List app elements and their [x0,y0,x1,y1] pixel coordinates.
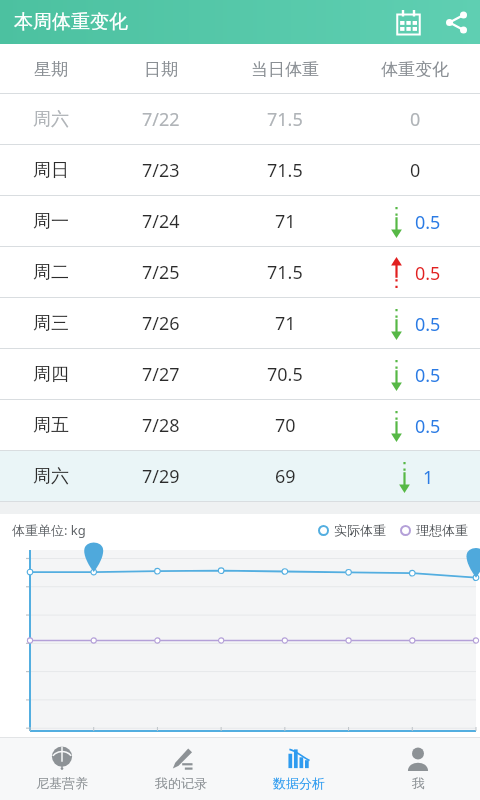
staticText: 星期 [34,59,68,80]
staticText: 71 [275,209,296,234]
staticText: 尼基营养 [36,775,88,791]
button[interactable]: 数据分析 [243,737,355,800]
staticText: 我 [412,775,425,791]
staticText: 体重变化 [381,59,449,80]
staticText: 数据分析 [273,775,325,791]
button[interactable]: Share [432,0,480,44]
staticText: 0.5 [415,414,441,439]
button[interactable]: 我 [362,737,474,800]
button[interactable]: 周日 [0,145,480,196]
button[interactable]: 周六 [0,451,480,502]
staticText: 周一 [33,210,69,233]
staticText: 0.5 [415,261,441,286]
staticText: 69 [275,464,296,489]
button[interactable]: 周三 [0,298,480,349]
staticText: 7/27 [142,362,180,387]
staticText: 7/25 [142,260,180,285]
staticText: 当日体重 [251,59,319,80]
staticText: 体重单位: kg [12,521,86,539]
staticText: 7/28 [142,413,180,438]
staticText: 0.5 [415,363,441,388]
staticText: 1 [423,465,434,490]
button[interactable]: 周一 [0,196,480,247]
button[interactable]: 尼基营养 [6,737,118,800]
staticText: 0 [410,107,421,132]
staticText: 周三 [33,312,69,335]
staticText: 7/22 [142,107,180,132]
staticText: 周日 [33,159,69,182]
button[interactable]: 周六 [0,94,480,145]
button[interactable]: 周五 [0,400,480,451]
staticText: 7/23 [142,158,180,183]
button[interactable]: 周二 [0,247,480,298]
staticText: 理想体重 [416,522,468,538]
staticText: 70.5 [267,362,303,387]
staticText: 周四 [33,363,69,386]
staticText: 实际体重 [334,522,386,538]
staticText: 70 [275,413,296,438]
staticText: 0 [410,158,421,183]
staticText: 周五 [33,414,69,437]
staticText: 71.5 [267,260,303,285]
button[interactable]: 周四 [0,349,480,400]
staticText: 周二 [33,261,69,284]
button[interactable]: 我的记录 [125,737,237,800]
staticText: 71.5 [267,107,303,132]
staticText: 周六 [33,465,69,488]
staticText: 0.5 [415,210,441,235]
staticText: 71 [275,311,296,336]
staticText: 日期 [144,59,178,80]
staticText: 本周体重变化 [14,10,128,34]
staticText: 我的记录 [155,775,207,791]
staticText: 7/24 [142,209,180,234]
staticText: 周六 [33,108,69,131]
button[interactable]: Calendar [384,0,432,44]
staticText: 7/26 [142,311,180,336]
staticText: 0.5 [415,312,441,337]
staticText: 71.5 [267,158,303,183]
staticText: 7/29 [142,464,180,489]
